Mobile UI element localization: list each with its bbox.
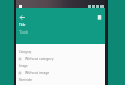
staticText: Category xyxy=(19,50,32,54)
staticText: Image xyxy=(19,64,28,68)
staticText: Task xyxy=(19,29,29,35)
staticText: Without category xyxy=(25,56,54,61)
button[interactable]: Navigate up xyxy=(17,12,28,23)
staticText: Reminder xyxy=(19,78,33,82)
button[interactable]: Without category xyxy=(16,55,105,62)
staticText: Title xyxy=(19,23,26,27)
button[interactable]: Without image xyxy=(16,69,105,76)
button[interactable]: Save xyxy=(94,12,105,23)
staticText: Without image xyxy=(25,70,50,75)
